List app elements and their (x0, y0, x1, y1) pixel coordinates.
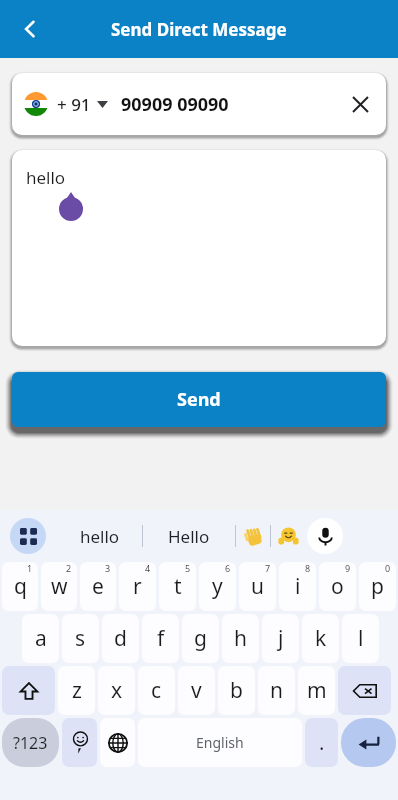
button[interactable]: d (102, 614, 139, 663)
staticText: r (133, 572, 142, 601)
staticText: e (92, 572, 104, 601)
staticText: Send (177, 387, 221, 412)
button[interactable]: Shift (2, 666, 55, 715)
staticText: 0 (385, 562, 391, 574)
staticText: m (307, 676, 327, 705)
staticText: i (295, 572, 301, 601)
staticText: Send Direct Message (111, 18, 287, 41)
staticText: 90909 09090 (121, 92, 229, 117)
staticText: 7 (265, 562, 271, 574)
button[interactable]: + 91 (24, 92, 108, 116)
staticText: 4 (145, 562, 151, 574)
staticText: Hello (168, 525, 210, 548)
staticText: x (111, 676, 123, 705)
staticText: 5 (185, 562, 191, 574)
staticText: j (278, 624, 284, 653)
button[interactable]: hello (12, 150, 386, 346)
staticText: 3 (105, 562, 111, 574)
button[interactable]: Hugging face emoji (271, 519, 305, 553)
staticText: 8 (305, 562, 311, 574)
button[interactable]: Toolbar (10, 518, 46, 554)
button[interactable]: x (98, 666, 135, 715)
button[interactable]: b (218, 666, 255, 715)
button[interactable]: m (298, 666, 335, 715)
button[interactable]: k (302, 614, 339, 663)
button[interactable]: l (342, 614, 379, 663)
button[interactable]: hello (58, 510, 142, 562)
button[interactable]: a (22, 614, 59, 663)
staticText: + 91 (57, 93, 91, 116)
staticText: u (251, 572, 264, 601)
staticText: t (174, 572, 182, 601)
button[interactable]: Clear (342, 86, 378, 122)
button[interactable]: Waving hand emoji (236, 519, 270, 553)
staticText: h (234, 624, 247, 653)
staticText: a (35, 624, 47, 653)
staticText: z (72, 676, 82, 705)
staticText: English (196, 733, 244, 752)
staticText: 2 (66, 562, 72, 574)
staticText: . (319, 729, 325, 756)
button[interactable]: i (279, 562, 316, 611)
button[interactable]: . (305, 718, 338, 767)
staticText: b (230, 676, 243, 705)
button[interactable]: Enter (341, 718, 396, 767)
button[interactable]: Send (12, 372, 386, 427)
button[interactable]: u (239, 562, 276, 611)
staticText: q (14, 572, 27, 601)
staticText: k (315, 624, 327, 653)
button[interactable]: o (319, 562, 356, 611)
staticText: n (270, 676, 283, 705)
staticText: hello (26, 166, 66, 189)
button[interactable]: Symbols (2, 718, 59, 767)
button[interactable]: z (58, 666, 95, 715)
staticText: hello (80, 525, 120, 548)
button[interactable]: Backspace (338, 666, 391, 715)
staticText: g (194, 624, 207, 653)
staticText: 6 (225, 562, 231, 574)
button[interactable]: Hello (143, 510, 235, 562)
button[interactable]: Emoji (62, 718, 97, 767)
button[interactable]: s (62, 614, 99, 663)
staticText: v (191, 676, 202, 705)
button[interactable]: Back (8, 7, 52, 51)
button[interactable]: c (138, 666, 175, 715)
staticText: f (157, 624, 165, 653)
staticText: c (151, 676, 162, 705)
button[interactable]: j (262, 614, 299, 663)
staticText: s (75, 624, 86, 653)
button[interactable]: f (142, 614, 179, 663)
button[interactable]: w (41, 562, 77, 611)
staticText: 9 (345, 562, 351, 574)
staticText: 1 (27, 562, 33, 574)
button[interactable]: q (2, 562, 38, 611)
button[interactable]: y (199, 562, 236, 611)
button[interactable]: English (138, 718, 302, 767)
button[interactable]: g (182, 614, 219, 663)
staticText: d (114, 624, 127, 653)
button[interactable]: Language (100, 718, 135, 767)
button[interactable]: Voice input (307, 518, 343, 554)
staticText: p (371, 572, 384, 601)
button[interactable]: t (159, 562, 196, 611)
button[interactable]: n (258, 666, 295, 715)
button[interactable]: p (359, 562, 396, 611)
staticText: o (331, 572, 344, 601)
button[interactable]: e (80, 562, 116, 611)
button[interactable]: r (119, 562, 156, 611)
staticText: w (51, 572, 68, 601)
staticText: y (212, 572, 223, 601)
button[interactable]: h (222, 614, 259, 663)
staticText: ?123 (13, 732, 48, 754)
staticText: l (358, 624, 364, 653)
button[interactable]: v (178, 666, 215, 715)
